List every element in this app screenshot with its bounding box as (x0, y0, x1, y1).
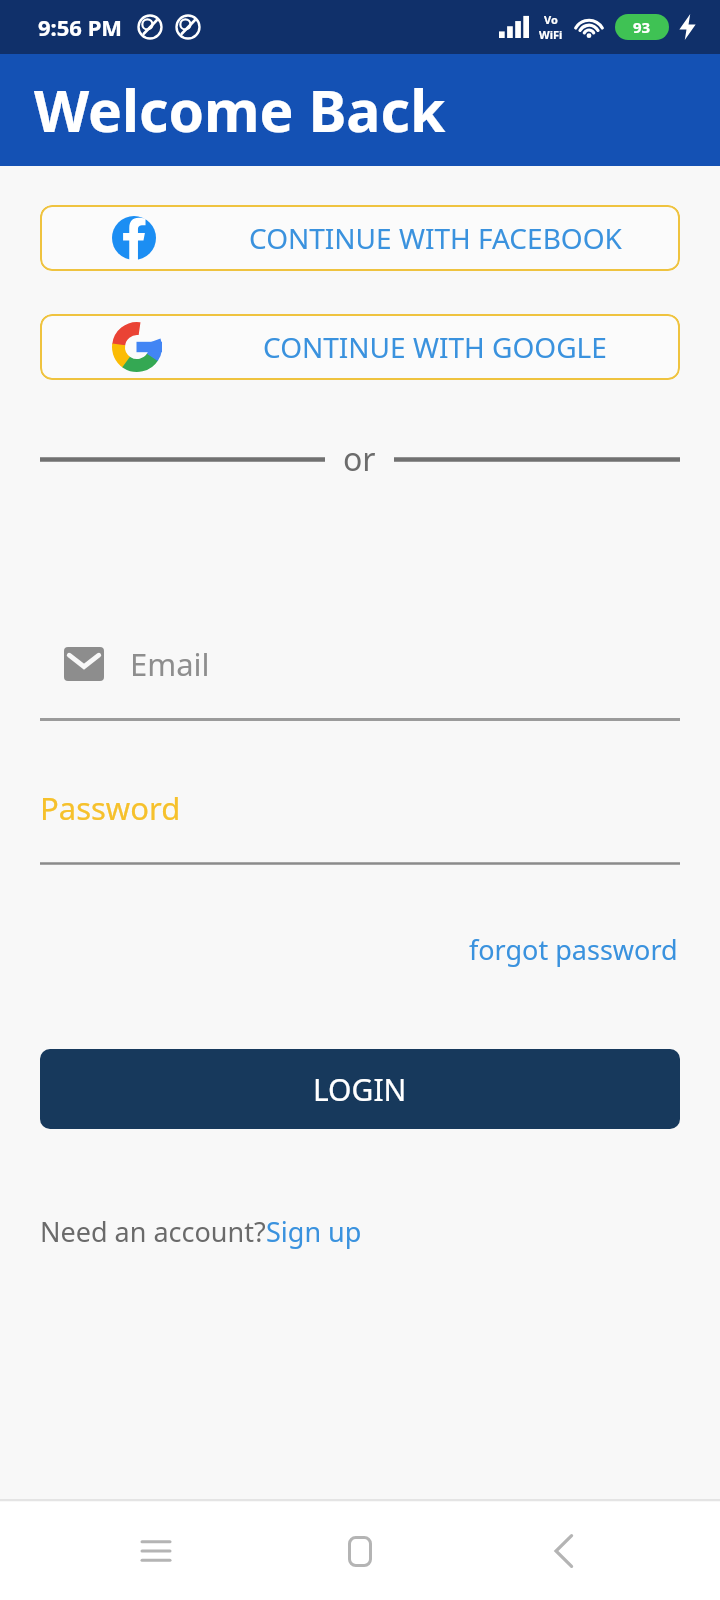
button[interactable]: forgot password (467, 925, 680, 974)
button[interactable]: LOGIN (40, 1049, 680, 1129)
staticText: Password (40, 787, 181, 829)
staticText: Welcome Back (34, 71, 446, 149)
staticText: WiFi (539, 27, 563, 42)
staticText: Need an account? (40, 1213, 266, 1250)
staticText: Email (130, 643, 210, 685)
staticText: 9:56 PM (38, 12, 123, 42)
button[interactable]: Back (516, 1503, 612, 1599)
staticText: forgot password (469, 931, 678, 968)
button[interactable]: Recent apps (108, 1503, 204, 1599)
staticText: CONTINUE WITH GOOGLE (263, 328, 607, 366)
staticText: CONTINUE WITH FACEBOOK (249, 219, 622, 257)
staticText: Vo (544, 12, 558, 27)
button[interactable]: Sign up (266, 1207, 362, 1256)
staticText: or (343, 437, 376, 481)
staticText: Sign up (266, 1213, 362, 1250)
staticText: LOGIN (313, 1069, 407, 1110)
staticText: 93 (633, 17, 651, 37)
button[interactable]: Continue with Facebook (40, 205, 680, 271)
button[interactable]: Email (40, 641, 680, 721)
button[interactable]: Home (312, 1503, 408, 1599)
button[interactable]: Password (40, 785, 680, 865)
button[interactable]: Continue with Google (40, 314, 680, 380)
